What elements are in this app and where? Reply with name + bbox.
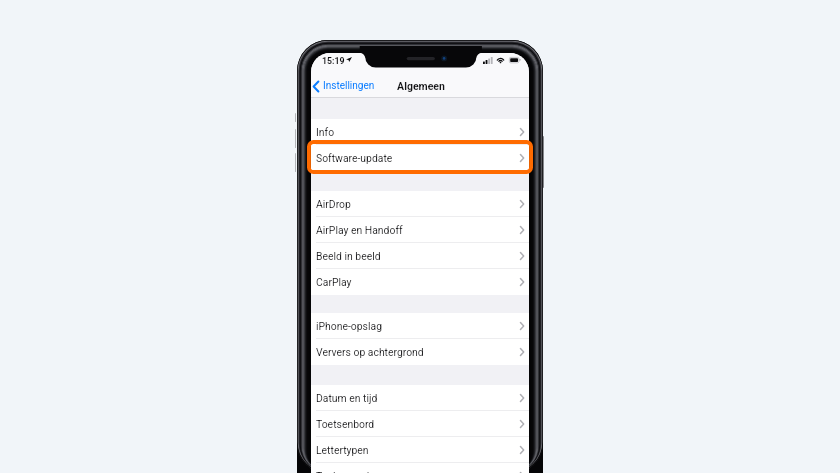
button[interactable]: AirDrop: [311, 191, 529, 217]
staticText: Software-update: [316, 152, 393, 164]
button[interactable]: AirPlay en Handoff: [311, 217, 529, 243]
staticText: Instellingen: [323, 80, 375, 92]
button[interactable]: Info: [311, 119, 529, 145]
button[interactable]: Ververs op achtergrond: [311, 339, 529, 365]
staticText: AirDrop: [316, 198, 351, 210]
staticText: Algemeen: [397, 80, 445, 92]
button[interactable]: Datum en tijd: [311, 385, 529, 411]
staticText: Toetsenbord: [316, 418, 375, 430]
staticText: iPhone-opslag: [316, 320, 382, 332]
button[interactable]: Software-update: [311, 145, 529, 171]
staticText: Ververs op achtergrond: [316, 346, 424, 358]
staticText: Lettertypen: [316, 444, 369, 456]
staticText: 15:19: [322, 56, 345, 66]
staticText: AirPlay en Handoff: [316, 224, 403, 236]
staticText: Info: [316, 126, 335, 138]
button[interactable]: Taal en regio: [311, 463, 529, 473]
staticText: Beeld in beeld: [316, 250, 381, 262]
button[interactable]: Lettertypen: [311, 437, 529, 463]
staticText: CarPlay: [316, 276, 352, 288]
button[interactable]: iPhone-opslag: [311, 313, 529, 339]
button[interactable]: Toetsenbord: [311, 411, 529, 437]
button[interactable]: CarPlay: [311, 269, 529, 295]
button[interactable]: Beeld in beeld: [311, 243, 529, 269]
button[interactable]: Instellingen: [311, 77, 378, 95]
staticText: Datum en tijd: [316, 392, 378, 404]
staticText: Taal en regio: [316, 470, 376, 473]
button[interactable]: Software-update: [307, 140, 533, 174]
